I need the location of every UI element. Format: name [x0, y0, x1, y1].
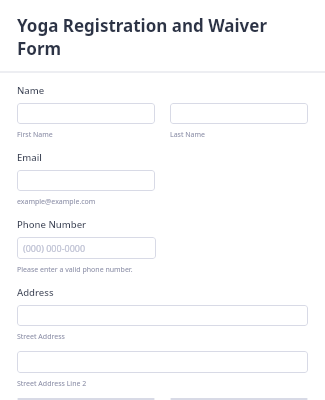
staticText: Phone Number [17, 218, 87, 231]
button[interactable] [17, 305, 308, 326]
staticText: (000) 000-0000 [23, 242, 86, 254]
button[interactable] [170, 103, 308, 124]
staticText: example@example.com [17, 197, 96, 207]
staticText: Yoga Registration and Waiver Form [17, 14, 308, 60]
staticText: Street Address Line 2 [17, 379, 87, 389]
staticText: Name [17, 84, 45, 97]
button[interactable] [17, 170, 155, 191]
staticText: Email [17, 151, 42, 164]
staticText: Street Address [17, 332, 65, 342]
button[interactable]: (000) 000-0000 [17, 237, 156, 259]
staticText: Please enter a valid phone number. [17, 265, 133, 275]
button[interactable] [17, 103, 155, 124]
staticText: Last Name [170, 130, 206, 140]
staticText: Address [17, 286, 54, 299]
button[interactable] [17, 351, 308, 373]
staticText: First Name [17, 130, 53, 140]
